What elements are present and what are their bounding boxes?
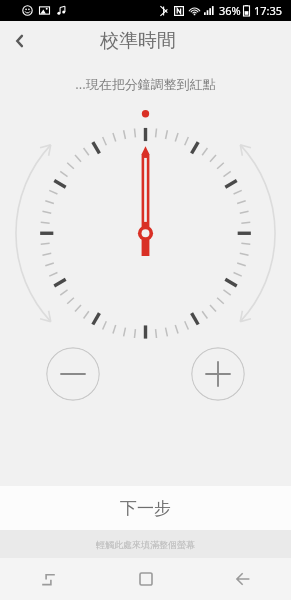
staticText: 17:35 bbox=[254, 3, 283, 18]
staticText: 36% bbox=[219, 3, 241, 18]
button[interactable]: Back bbox=[0, 21, 40, 61]
staticText: 校準時間 bbox=[100, 29, 176, 53]
staticText: 輕觸此處來填滿整個螢幕 bbox=[96, 539, 195, 550]
staticText: ...現在把分鐘調整到紅點 bbox=[0, 75, 291, 93]
button[interactable]: Increase bbox=[191, 347, 245, 401]
button[interactable]: 下一步 bbox=[0, 486, 291, 530]
button[interactable]: Recents bbox=[0, 558, 97, 600]
button[interactable]: 輕觸此處來填滿整個螢幕 bbox=[0, 530, 291, 558]
button[interactable]: Back bbox=[194, 558, 291, 600]
staticText: 下一步 bbox=[120, 498, 171, 519]
button[interactable]: Home bbox=[97, 558, 194, 600]
button[interactable]: Decrease bbox=[46, 347, 100, 401]
